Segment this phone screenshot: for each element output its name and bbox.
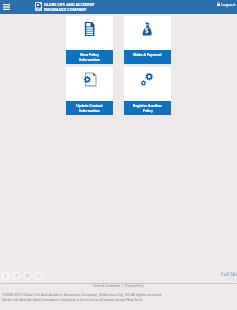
button[interactable]: Update Contact bbox=[66, 67, 113, 115]
staticText: Information bbox=[79, 108, 100, 113]
button[interactable]: Privacy Policy bbox=[125, 284, 144, 288]
button[interactable]: LinkedIn bbox=[34, 271, 43, 280]
button[interactable]: Menu bbox=[0, 0, 12, 14]
button[interactable]: View Policy bbox=[66, 16, 113, 64]
button[interactable]: Twitter bbox=[12, 271, 21, 280]
staticText: Logout bbox=[221, 1, 236, 7]
staticText: Make A Payment bbox=[133, 52, 162, 57]
staticText: Information bbox=[79, 57, 100, 62]
staticText: INSURANCE COMPANY bbox=[44, 7, 87, 12]
staticText: View Policy bbox=[80, 52, 99, 57]
button[interactable]: YouTube bbox=[23, 271, 32, 280]
button[interactable]: Register Another bbox=[124, 67, 171, 115]
button[interactable]: Facebook bbox=[1, 271, 10, 280]
button[interactable]: Make A Payment bbox=[124, 16, 171, 64]
button[interactable]: Terms & Conditions bbox=[93, 284, 120, 288]
staticText: ©2009-2015 Globe Life And Accident Insur… bbox=[2, 292, 162, 297]
button[interactable]: Full Site bbox=[221, 271, 237, 278]
button[interactable]: Logout bbox=[215, 0, 237, 8]
staticText: | bbox=[120, 284, 125, 288]
staticText: GLOBE LIFE AND ACCIDENT bbox=[44, 2, 95, 7]
staticText: Register Another bbox=[133, 103, 162, 108]
staticText: Globe Life And Accident Insurance Compan… bbox=[2, 297, 143, 302]
staticText: Update Contact bbox=[76, 103, 103, 108]
staticText: Policy bbox=[143, 108, 153, 113]
